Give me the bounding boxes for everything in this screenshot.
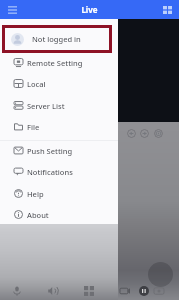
button[interactable]: Next channel — [140, 129, 149, 138]
button[interactable]: Server List — [0, 95, 118, 116]
staticText: Server List — [27, 101, 65, 111]
staticText: Remote Setting — [27, 58, 83, 68]
button[interactable]: Not logged in — [2, 25, 112, 53]
button[interactable]: Remote Setting — [0, 52, 118, 73]
button[interactable]: Mute — [150, 282, 168, 300]
button[interactable]: File — [0, 116, 118, 137]
staticText: About — [27, 210, 49, 220]
staticText: Push Setting — [27, 146, 73, 156]
staticText: Help — [27, 189, 44, 199]
button[interactable]: Previous channel — [127, 129, 136, 138]
button[interactable]: Menu — [0, 0, 24, 19]
staticText: Notifications — [27, 167, 73, 177]
button[interactable]: Pause — [135, 282, 153, 300]
button[interactable]: About — [0, 204, 118, 225]
staticText: Not logged in — [32, 34, 81, 44]
button[interactable]: Split layout — [80, 282, 98, 300]
button[interactable]: Snapshot — [154, 129, 163, 138]
staticText: Local — [27, 79, 46, 89]
staticText: File — [27, 122, 40, 132]
button[interactable]: Push Setting — [0, 140, 118, 161]
button[interactable]: Notifications — [0, 161, 118, 182]
button[interactable]: Volume — [44, 282, 62, 300]
button[interactable]: Microphone — [8, 282, 26, 300]
staticText: Live — [24, 4, 155, 15]
button[interactable]: Record video — [116, 282, 134, 300]
button[interactable]: PTZ control — [148, 262, 173, 287]
button[interactable]: Help — [0, 183, 118, 204]
button[interactable]: Split screen layout — [155, 0, 179, 19]
button[interactable]: Local — [0, 73, 118, 94]
